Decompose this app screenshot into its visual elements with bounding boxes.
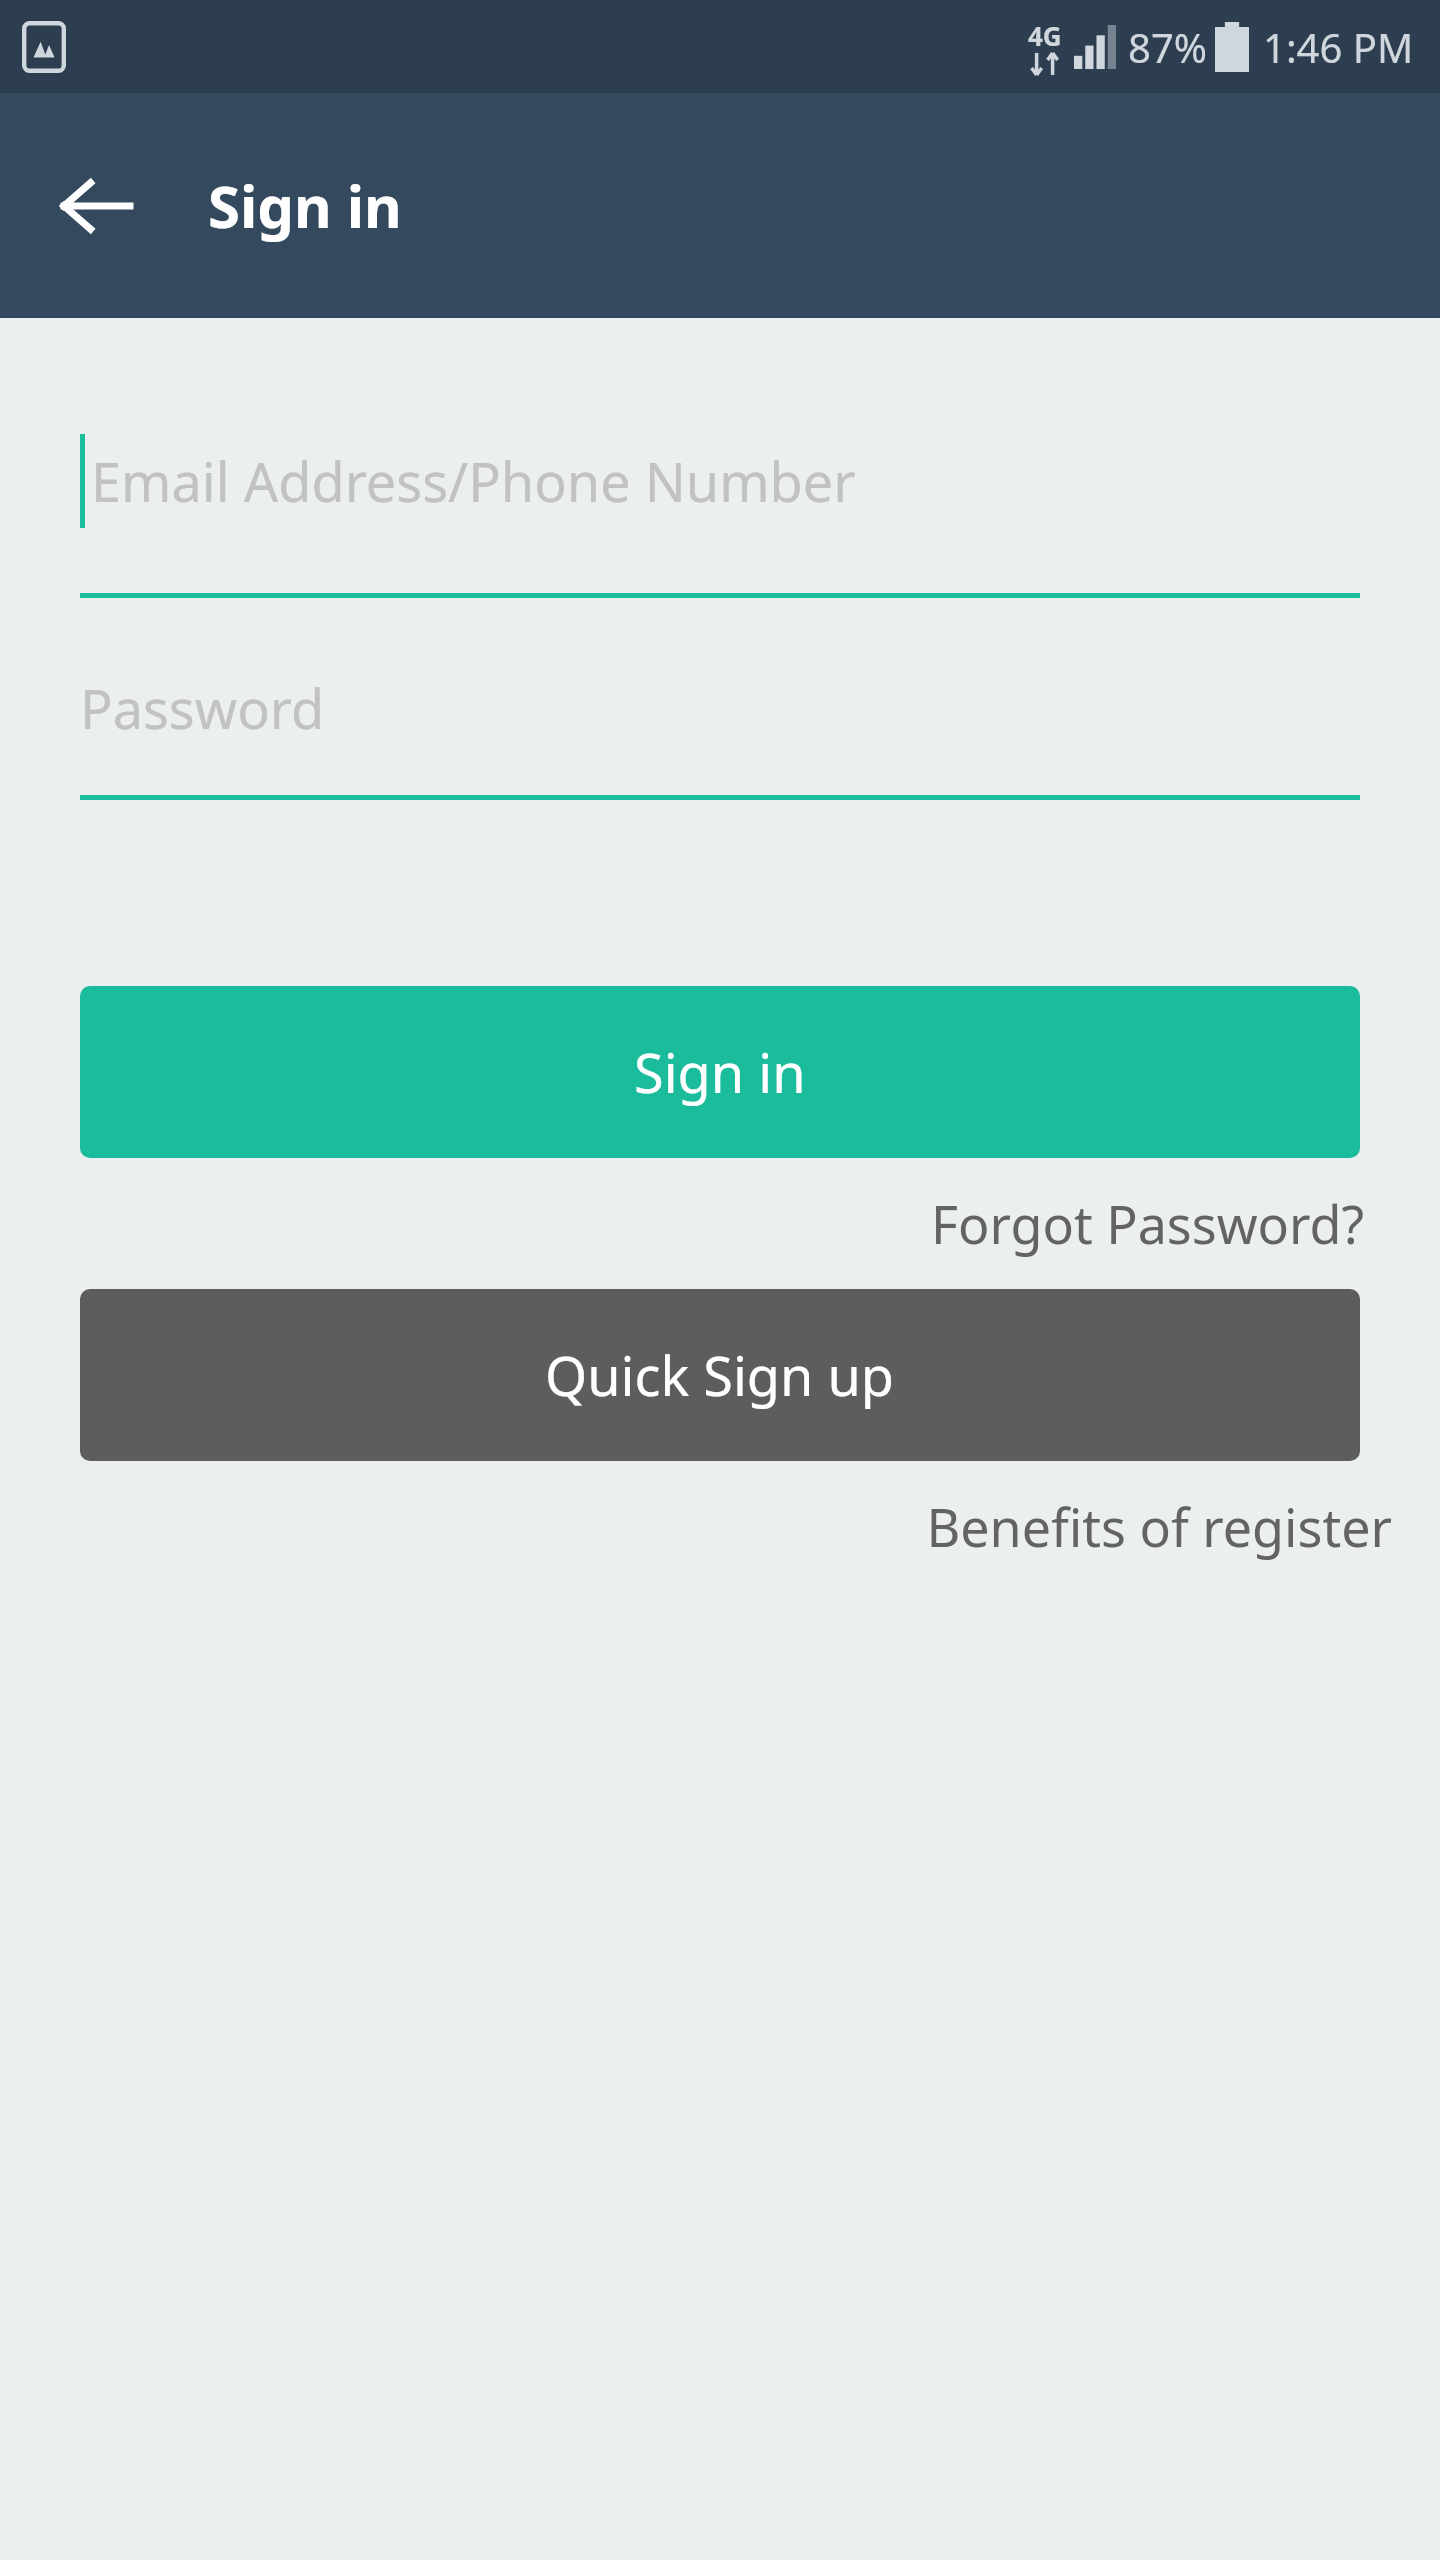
button[interactable]: Forgot Password?	[923, 1180, 1372, 1267]
button[interactable]: Quick Sign up	[80, 1289, 1360, 1461]
staticText: 4G	[1028, 18, 1062, 53]
button[interactable]: Email Address/Phone Number	[80, 426, 1360, 536]
staticText: Sign in	[208, 166, 402, 245]
button[interactable]: Sign in	[80, 986, 1360, 1158]
staticText: Forgot Password?	[931, 1188, 1364, 1259]
staticText: Benefits of register	[926, 1491, 1392, 1562]
button[interactable]: Back	[36, 146, 156, 266]
staticText: Sign in	[634, 1035, 806, 1109]
staticText: Quick Sign up	[545, 1338, 895, 1412]
staticText: 87%	[1128, 20, 1207, 74]
staticText: 1:46 PM	[1263, 20, 1414, 74]
button[interactable]: Password	[80, 658, 1360, 758]
staticText: Email Address/Phone Number	[91, 444, 856, 518]
button[interactable]: Benefits of register	[918, 1483, 1400, 1570]
staticText: Password	[80, 671, 325, 745]
